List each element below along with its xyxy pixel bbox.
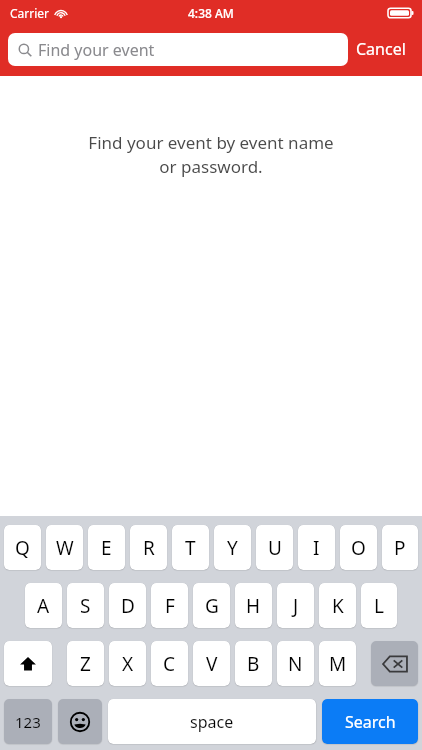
staticText: K: [332, 593, 344, 619]
staticText: B: [247, 651, 260, 677]
button[interactable]: T: [172, 525, 209, 570]
button[interactable]: Shift: [4, 641, 52, 686]
button[interactable]: Find your event: [8, 33, 348, 66]
button[interactable]: F: [151, 583, 188, 628]
staticText: M: [329, 651, 347, 677]
button[interactable]: D: [109, 583, 146, 628]
staticText: C: [163, 651, 176, 677]
button[interactable]: W: [46, 525, 83, 570]
staticText: D: [121, 593, 135, 619]
staticText: R: [143, 535, 155, 561]
staticText: T: [185, 535, 196, 561]
button[interactable]: K: [319, 583, 356, 628]
button[interactable]: I: [298, 525, 335, 570]
button[interactable]: Backspace: [371, 641, 418, 686]
staticText: Z: [80, 651, 91, 677]
staticText: W: [56, 535, 74, 561]
staticText: G: [205, 593, 219, 619]
staticText: Find your event: [38, 39, 155, 61]
button[interactable]: M: [319, 641, 356, 686]
button[interactable]: 123: [4, 699, 52, 744]
staticText: N: [288, 651, 303, 677]
button[interactable]: R: [130, 525, 167, 570]
button[interactable]: Cancel: [348, 32, 414, 66]
staticText: X: [122, 651, 134, 677]
button[interactable]: Q: [4, 525, 41, 570]
staticText: U: [268, 535, 282, 561]
staticText: I: [313, 535, 320, 561]
button[interactable]: P: [382, 525, 418, 570]
staticText: P: [394, 535, 406, 561]
button[interactable]: Emoji: [58, 699, 102, 744]
staticText: 123: [15, 712, 41, 732]
button[interactable]: U: [256, 525, 293, 570]
staticText: O: [351, 535, 366, 561]
staticText: H: [246, 593, 261, 619]
staticText: Search: [345, 711, 396, 733]
staticText: L: [374, 593, 384, 619]
button[interactable]: space: [108, 699, 316, 744]
button[interactable]: O: [340, 525, 377, 570]
button[interactable]: Search: [322, 699, 418, 744]
staticText: A: [37, 593, 50, 619]
button[interactable]: E: [88, 525, 125, 570]
staticText: Carrier: [10, 5, 50, 21]
button[interactable]: C: [151, 641, 188, 686]
button[interactable]: Z: [67, 641, 104, 686]
button[interactable]: H: [235, 583, 272, 628]
staticText: J: [293, 593, 299, 619]
button[interactable]: S: [67, 583, 104, 628]
button[interactable]: A: [25, 583, 62, 628]
staticText: F: [165, 593, 175, 619]
button[interactable]: G: [193, 583, 230, 628]
staticText: Cancel: [356, 38, 406, 60]
staticText: Q: [15, 535, 30, 561]
button[interactable]: L: [361, 583, 397, 628]
button[interactable]: B: [235, 641, 272, 686]
staticText: 4:38 AM: [188, 5, 234, 21]
button[interactable]: N: [277, 641, 314, 686]
button[interactable]: V: [193, 641, 230, 686]
staticText: Y: [227, 535, 238, 561]
staticText: E: [101, 535, 112, 561]
staticText: V: [206, 651, 218, 677]
staticText: space: [190, 711, 234, 733]
button[interactable]: J: [277, 583, 314, 628]
button[interactable]: X: [109, 641, 146, 686]
button[interactable]: Y: [214, 525, 251, 570]
staticText: Find your event by event name or passwor…: [0, 131, 422, 178]
staticText: S: [80, 593, 91, 619]
